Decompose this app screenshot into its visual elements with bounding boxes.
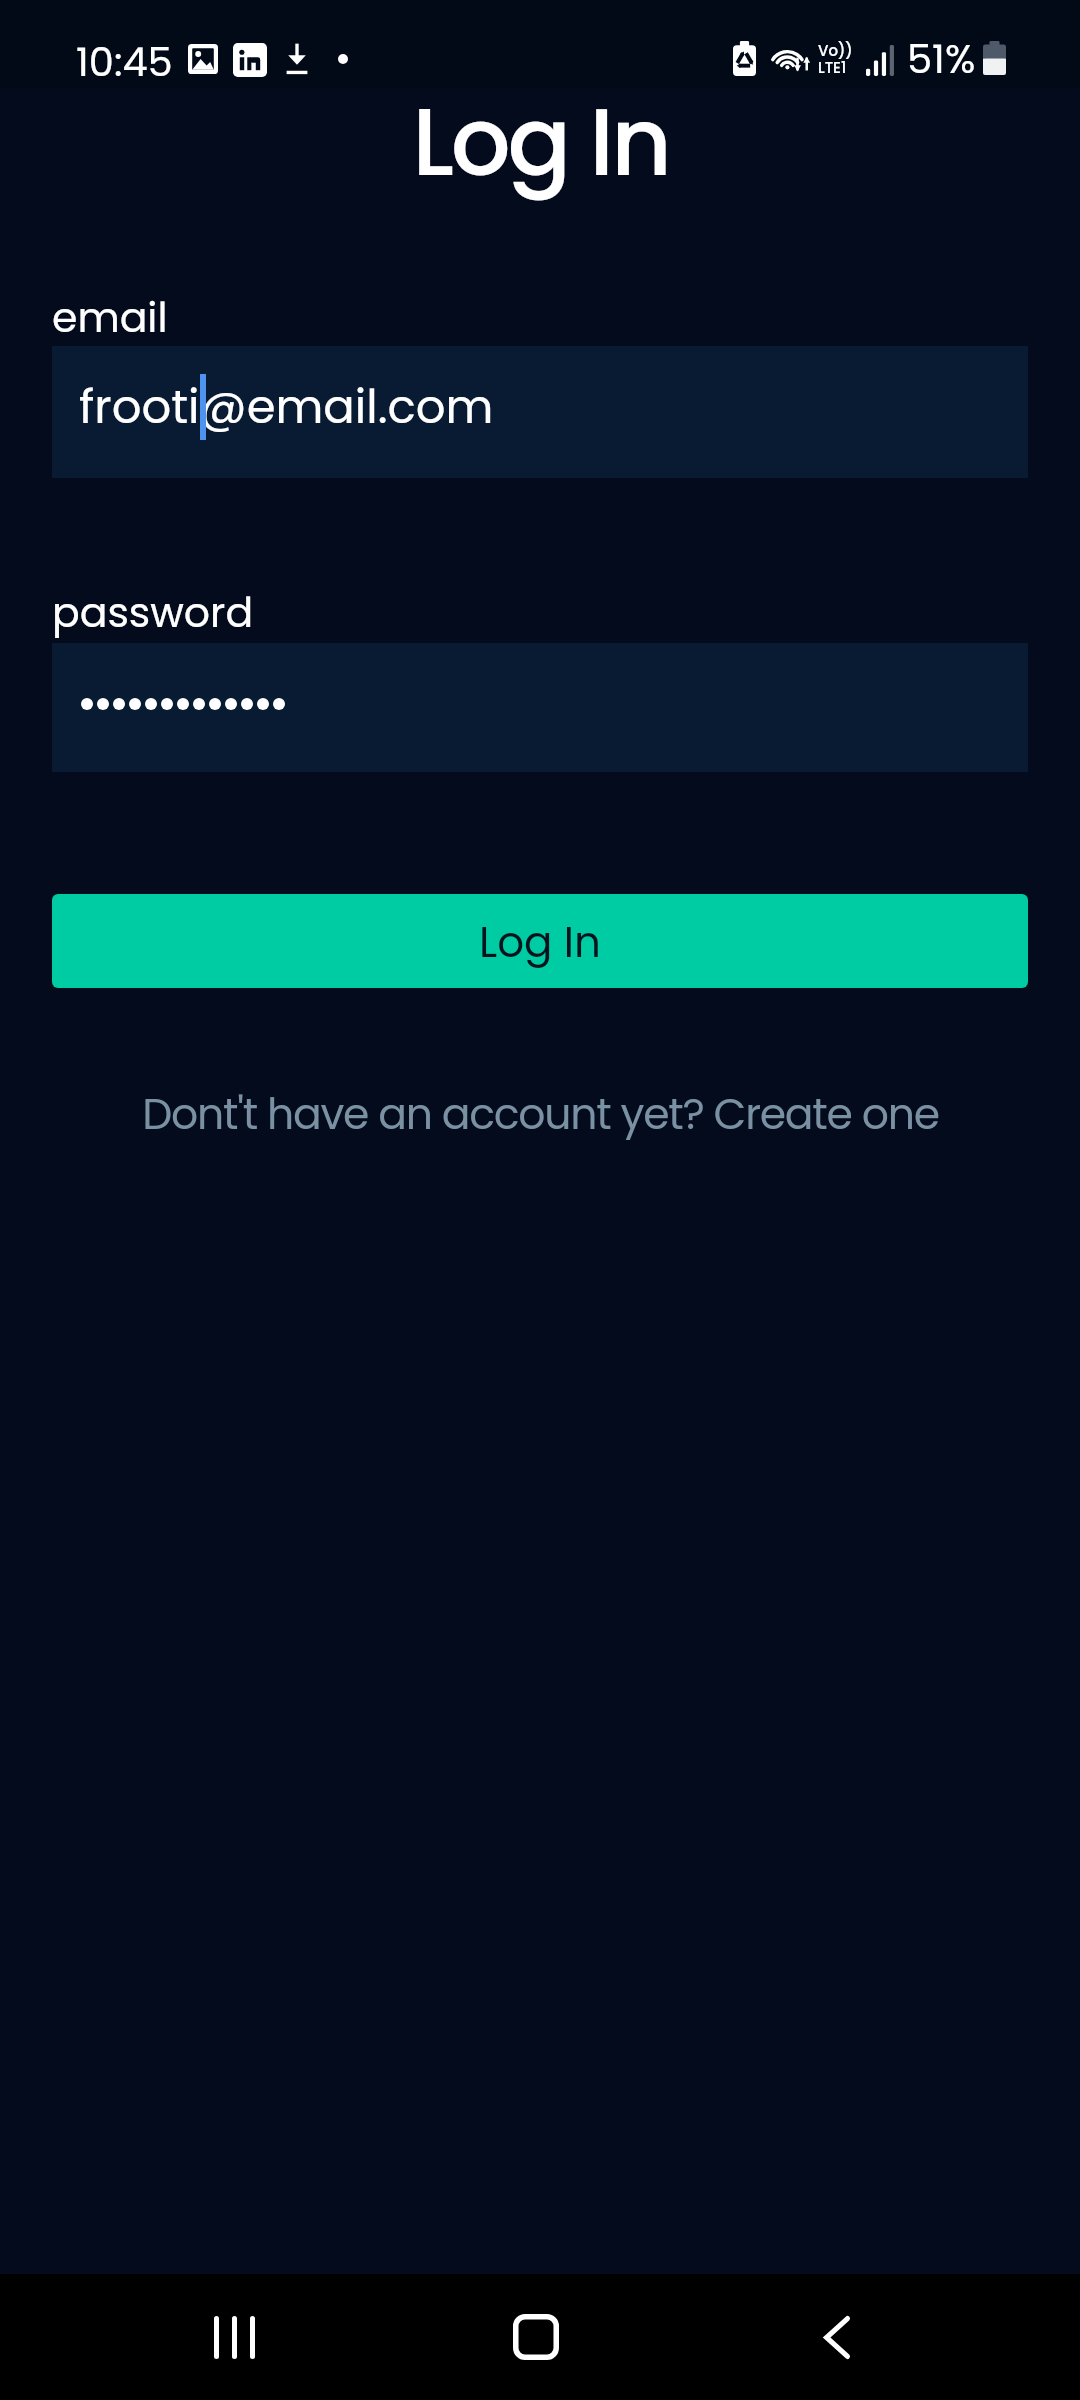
button[interactable]: Back	[757, 2274, 917, 2400]
button[interactable]: Log In	[52, 894, 1028, 988]
staticText: Log In	[479, 913, 601, 972]
button[interactable]	[52, 643, 1028, 772]
staticText: Vo))	[818, 40, 853, 61]
button[interactable]: Recent apps	[154, 2274, 314, 2400]
button[interactable]: Dont't have an account yet? Create one	[0, 1084, 1080, 1143]
button[interactable]: Home	[456, 2274, 616, 2400]
staticText: 51%	[907, 31, 976, 87]
staticText: Dont't have an account yet? Create one	[142, 1084, 939, 1143]
staticText: email	[52, 289, 168, 346]
staticText: frooti@email.com	[79, 374, 494, 439]
staticText: Log In	[412, 76, 669, 208]
staticText: 10:45	[76, 34, 173, 90]
staticText: LTE1	[818, 57, 847, 78]
button[interactable]: frooti@email.com	[52, 346, 1028, 478]
staticText: password	[52, 584, 254, 641]
